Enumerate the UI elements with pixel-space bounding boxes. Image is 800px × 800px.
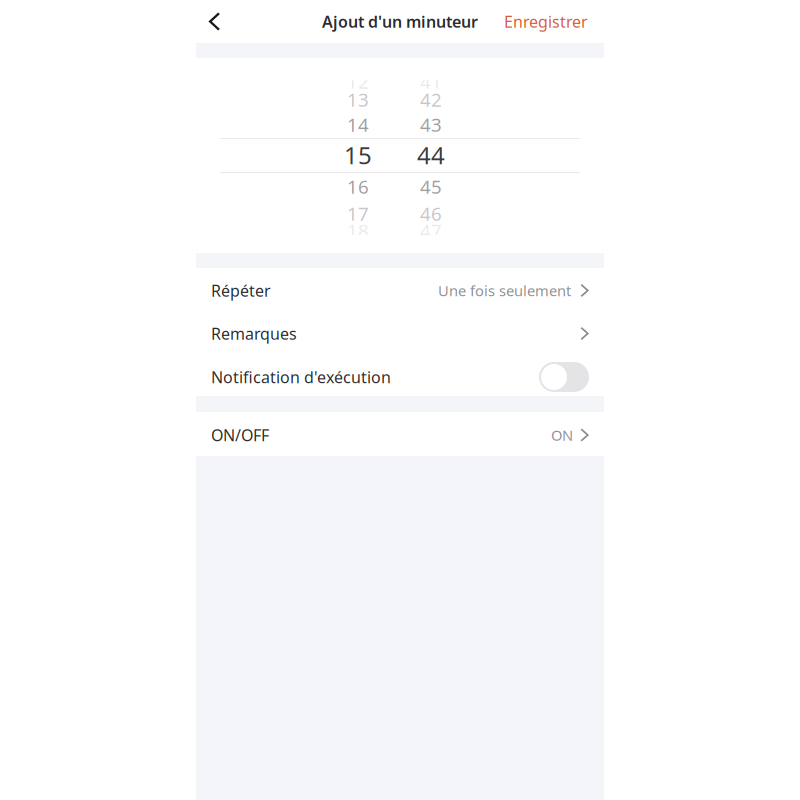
staticText: ON/OFF [211, 424, 269, 446]
button[interactable]: ON/OFF [196, 412, 604, 456]
staticText: 18 [347, 218, 369, 243]
staticText: 44 [417, 139, 445, 171]
staticText: 45 [420, 174, 442, 199]
staticText: Remarques [211, 323, 297, 344]
staticText: 47 [420, 218, 442, 243]
button[interactable]: Notification d'exécution [539, 362, 589, 392]
staticText: Ajout d'un minuteur [322, 11, 478, 32]
staticText: 14 [347, 112, 369, 137]
staticText: Notification d'exécution [211, 366, 391, 388]
staticText: Répéter [211, 280, 271, 301]
staticText: 43 [420, 112, 442, 137]
staticText: 41 [420, 69, 442, 94]
button[interactable]: Remarques [196, 311, 604, 354]
button[interactable]: Retour [196, 0, 233, 43]
staticText: Une fois seulement [438, 281, 571, 300]
staticText: 15 [344, 139, 372, 171]
staticText: 13 [347, 87, 369, 112]
staticText: Enregistrer [504, 11, 588, 32]
staticText: 17 [347, 201, 369, 226]
button[interactable]: Répéter [196, 268, 604, 311]
staticText: 16 [347, 174, 369, 199]
staticText: 46 [420, 201, 442, 226]
staticText: 12 [347, 69, 369, 94]
staticText: ON [551, 425, 573, 445]
button[interactable]: Enregistrer [504, 0, 604, 43]
staticText: 42 [420, 87, 442, 112]
